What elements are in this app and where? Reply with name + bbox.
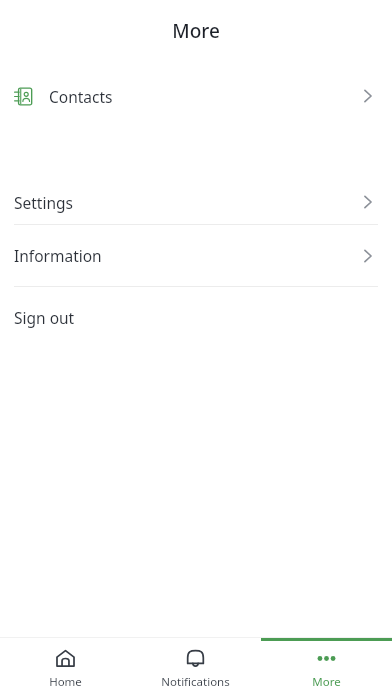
- button[interactable]: Home: [0, 638, 130, 696]
- staticText: More: [312, 674, 341, 690]
- other: More: [315, 647, 338, 670]
- button[interactable]: Sign out: [0, 287, 392, 348]
- staticText: Information: [14, 245, 102, 266]
- staticText: Sign out: [14, 307, 75, 328]
- staticText: Settings: [14, 192, 73, 213]
- button[interactable]: Settings: [0, 180, 392, 224]
- staticText: Home: [49, 674, 82, 690]
- staticText: Notifications: [161, 674, 230, 690]
- staticText: Contacts: [49, 86, 113, 107]
- button[interactable]: Contacts: [0, 74, 392, 118]
- other: Home: [54, 647, 77, 670]
- button[interactable]: Information: [0, 225, 392, 286]
- staticText: More: [172, 18, 220, 44]
- other: Notifications: [184, 647, 207, 670]
- button[interactable]: More: [261, 638, 392, 696]
- button[interactable]: Notifications: [130, 638, 261, 696]
